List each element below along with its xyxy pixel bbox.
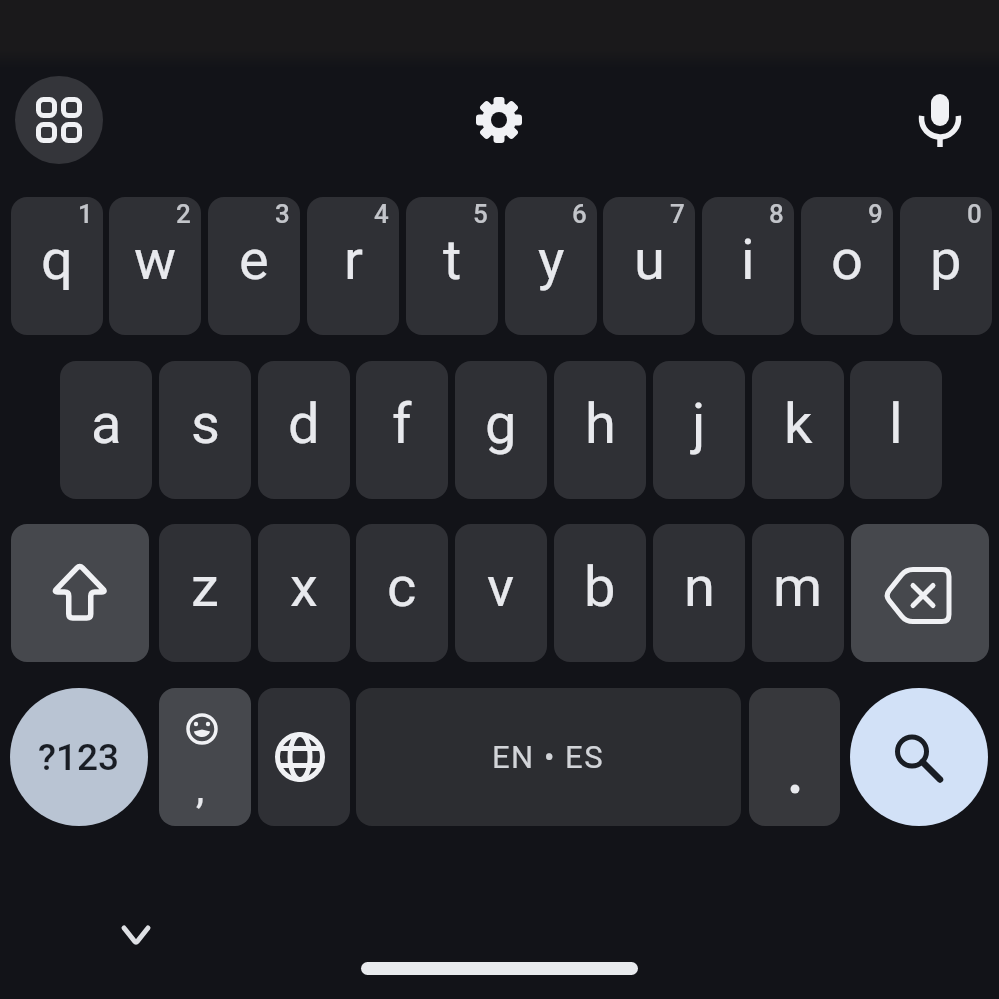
button[interactable]: w: [109, 197, 201, 335]
staticText: t: [443, 227, 462, 293]
staticText: l: [889, 391, 903, 457]
staticText: 7: [670, 199, 685, 229]
staticText: m: [773, 554, 823, 620]
staticText: 5: [473, 199, 488, 229]
button[interactable]: f: [356, 361, 448, 499]
button[interactable]: t: [406, 197, 498, 335]
staticText: 2: [176, 199, 191, 229]
button[interactable]: d: [258, 361, 350, 499]
staticText: w: [134, 227, 177, 293]
staticText: d: [288, 391, 320, 457]
staticText: j: [692, 391, 706, 457]
button[interactable]: [11, 524, 149, 662]
button[interactable]: [749, 688, 840, 826]
staticText: e: [239, 227, 269, 293]
staticText: h: [585, 391, 616, 457]
button[interactable]: s: [159, 361, 251, 499]
button[interactable]: p: [900, 197, 992, 335]
staticText: z: [191, 554, 219, 620]
button[interactable]: r: [307, 197, 399, 335]
button[interactable]: ?123: [10, 688, 148, 826]
staticText: p: [930, 227, 962, 293]
button[interactable]: [107, 906, 167, 966]
button[interactable]: v: [455, 524, 547, 662]
staticText: b: [584, 554, 616, 620]
staticText: i: [741, 227, 755, 293]
button[interactable]: [910, 88, 970, 148]
staticText: f: [392, 391, 412, 457]
staticText: y: [538, 227, 565, 293]
button[interactable]: g: [455, 361, 547, 499]
button[interactable]: y: [505, 197, 597, 335]
staticText: c: [387, 554, 417, 620]
staticText: v: [487, 554, 515, 620]
button[interactable]: b: [554, 524, 646, 662]
button[interactable]: x: [258, 524, 350, 662]
staticText: o: [831, 227, 863, 293]
button[interactable]: l: [850, 361, 942, 499]
staticText: 3: [275, 199, 290, 229]
staticText: ,: [196, 764, 205, 813]
staticText: 8: [769, 199, 784, 229]
staticText: k: [784, 391, 813, 457]
staticText: g: [485, 391, 517, 457]
button[interactable]: q: [11, 197, 103, 335]
staticText: 9: [868, 199, 883, 229]
button[interactable]: z: [159, 524, 251, 662]
button[interactable]: ,: [159, 688, 251, 826]
button[interactable]: [258, 688, 350, 826]
button[interactable]: j: [653, 361, 745, 499]
staticText: EN • ES: [492, 739, 605, 775]
staticText: x: [290, 554, 318, 620]
button[interactable]: [851, 524, 989, 662]
button[interactable]: i: [702, 197, 794, 335]
button[interactable]: c: [356, 524, 448, 662]
button[interactable]: n: [653, 524, 745, 662]
button[interactable]: o: [801, 197, 893, 335]
staticText: n: [684, 554, 715, 620]
button[interactable]: u: [603, 197, 695, 335]
staticText: ?123: [38, 736, 120, 779]
button[interactable]: k: [752, 361, 844, 499]
staticText: q: [41, 227, 73, 293]
button[interactable]: [850, 688, 988, 826]
button[interactable]: a: [60, 361, 152, 499]
button[interactable]: EN • ES: [356, 688, 741, 826]
staticText: 0: [967, 199, 982, 229]
button[interactable]: [15, 76, 103, 164]
button[interactable]: m: [752, 524, 844, 662]
button[interactable]: e: [208, 197, 300, 335]
staticText: s: [191, 391, 220, 457]
staticText: 6: [572, 199, 587, 229]
staticText: r: [344, 227, 363, 293]
button[interactable]: [469, 90, 529, 150]
staticText: u: [634, 227, 665, 293]
staticText: 4: [374, 199, 389, 229]
staticText: 1: [78, 199, 93, 229]
staticText: a: [91, 391, 122, 457]
button[interactable]: h: [554, 361, 646, 499]
